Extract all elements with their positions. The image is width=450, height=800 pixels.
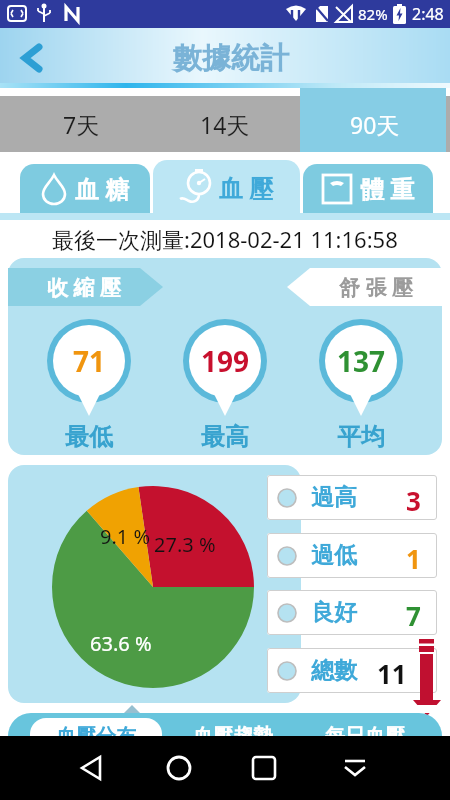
staticText: 血 糖	[75, 172, 130, 205]
staticText: 體 重	[360, 172, 415, 205]
staticText: 數據統計	[173, 40, 289, 77]
staticText: 14天	[200, 109, 250, 140]
staticText: 最後一次測量:2018-02-21 11:16:58	[52, 224, 398, 254]
staticText: 90天	[350, 109, 400, 140]
staticText: 過低	[311, 541, 357, 570]
button[interactable]: 過高	[267, 475, 437, 520]
button[interactable]: 過低	[267, 533, 437, 578]
staticText: 最低	[65, 422, 113, 452]
button[interactable]: 血壓分布	[30, 718, 162, 736]
staticText: 3	[406, 483, 421, 518]
button[interactable]: 總數	[267, 648, 437, 693]
staticText: 27.3 %	[154, 531, 216, 558]
staticText: 11	[377, 656, 407, 691]
staticText: 血 壓	[219, 171, 274, 204]
button[interactable]: 90天	[300, 96, 450, 152]
staticText: 良好	[311, 598, 357, 627]
button[interactable]: 每日血壓	[300, 713, 430, 736]
button[interactable]: 血壓趨勢	[168, 713, 298, 736]
staticText: 137	[337, 342, 386, 380]
button[interactable]: 良好	[267, 590, 437, 635]
button[interactable]	[21, 44, 43, 72]
staticText: 63.6 %	[90, 630, 152, 657]
staticText: 過高	[311, 483, 357, 512]
button[interactable]	[0, 736, 112, 800]
staticText: 7	[406, 598, 421, 633]
button[interactable]	[337, 736, 450, 800]
staticText: 最高	[201, 422, 249, 452]
staticText: 血壓趨勢	[193, 724, 273, 736]
button[interactable]	[224, 736, 337, 800]
staticText: 1	[406, 541, 421, 576]
staticText: 71	[73, 342, 106, 380]
button[interactable]: 舒 張 壓	[310, 268, 442, 306]
staticText: 199	[201, 342, 250, 380]
staticText: 7天	[63, 109, 100, 140]
staticText: 總數	[311, 656, 357, 685]
button[interactable]: 血 壓	[153, 160, 300, 213]
button[interactable]: 7天	[0, 96, 150, 152]
staticText: 平均	[337, 422, 385, 452]
button[interactable]: 14天	[150, 96, 300, 152]
button[interactable]: 收 縮 壓	[18, 268, 150, 306]
button[interactable]: 體 重	[303, 164, 433, 213]
staticText: 2:48	[412, 3, 444, 25]
staticText: 舒 張 壓	[339, 273, 413, 302]
staticText: 82%	[358, 4, 388, 24]
staticText: 血壓分布	[56, 724, 136, 736]
button[interactable]: 血 糖	[20, 164, 150, 213]
staticText: 9.1 %	[100, 523, 151, 550]
staticText: 收 縮 壓	[47, 273, 121, 302]
button[interactable]	[112, 736, 224, 800]
staticText: 每日血壓	[325, 724, 405, 736]
